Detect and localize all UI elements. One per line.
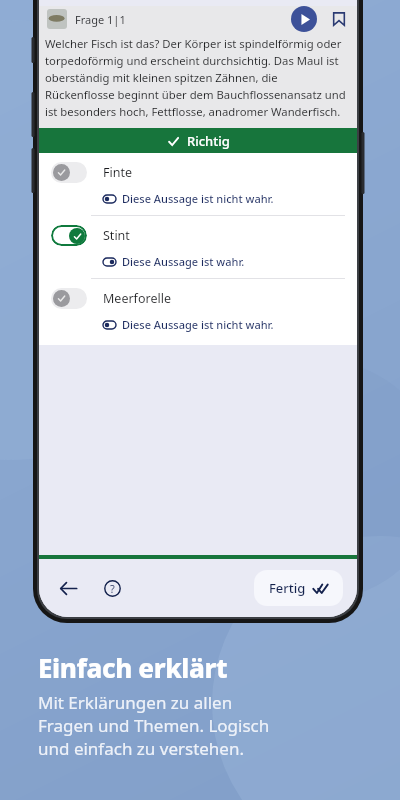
staticText: Diese Aussage ist nicht wahr. <box>122 191 274 206</box>
button[interactable]: Stint <box>39 216 357 279</box>
button[interactable]: Hilfe <box>97 573 127 603</box>
button[interactable]: Fertig <box>254 570 343 606</box>
staticText: ? <box>110 581 115 596</box>
staticText: Welcher Fisch ist das? Der Körper ist sp… <box>45 36 349 120</box>
staticText: Diese Aussage ist wahr. <box>122 254 245 269</box>
staticText: Stint <box>103 227 130 244</box>
button[interactable]: Zurück <box>53 573 83 603</box>
staticText: Richtig <box>187 132 230 150</box>
button[interactable]: Meerforelle <box>39 279 357 341</box>
staticText: Frage 1|1 <box>75 12 126 27</box>
staticText: Mit Erklärungen zu allen Fragen und Them… <box>38 691 270 760</box>
button[interactable]: Audio abspielen <box>291 6 317 32</box>
staticText: Diese Aussage ist nicht wahr. <box>122 317 274 332</box>
button[interactable]: Finte <box>39 153 357 216</box>
staticText: Einfach erklärt <box>38 650 228 685</box>
staticText: Finte <box>103 164 133 181</box>
staticText: Meerforelle <box>103 290 171 307</box>
staticText: Fertig <box>269 579 306 597</box>
button[interactable]: Lesezeichen <box>329 9 349 29</box>
